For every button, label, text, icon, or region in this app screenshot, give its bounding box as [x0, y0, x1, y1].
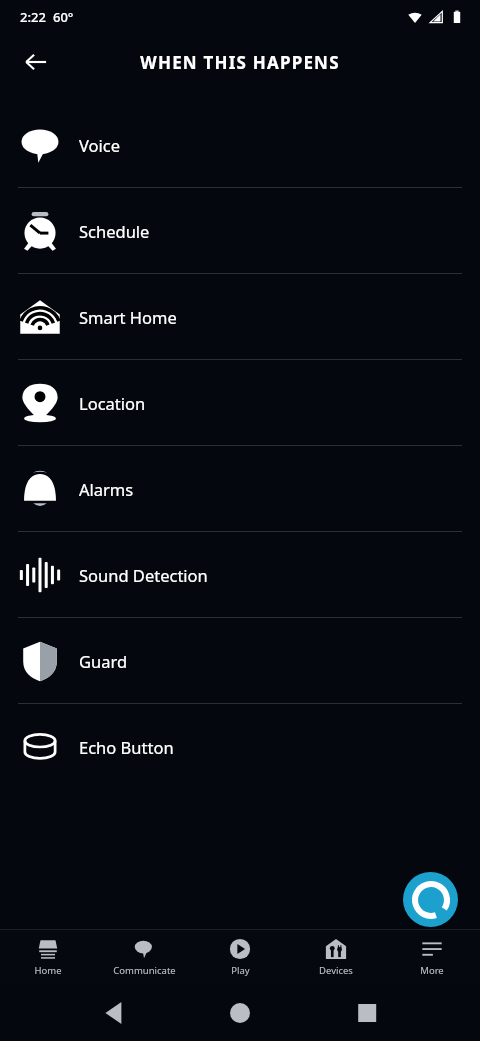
button[interactable]: More	[384, 930, 480, 985]
staticText: More	[420, 964, 444, 977]
staticText: 2:22	[20, 8, 46, 26]
button[interactable]: Alexa	[403, 872, 458, 927]
button[interactable]: Location	[0, 360, 480, 445]
staticText: Home	[34, 964, 62, 977]
staticText: Sound Detection	[79, 564, 208, 586]
staticText: WHEN THIS HAPPENS	[140, 51, 340, 74]
button[interactable]: Alarms	[0, 446, 480, 531]
staticText: 60°	[53, 8, 74, 26]
button[interactable]: Communicate	[96, 930, 192, 985]
staticText: Play	[231, 964, 250, 977]
button[interactable]: Home	[0, 930, 96, 985]
staticText: Alarms	[79, 478, 134, 500]
staticText: Communicate	[113, 964, 176, 977]
staticText: Schedule	[79, 220, 150, 242]
button[interactable]: Guard	[0, 618, 480, 703]
staticText: Smart Home	[79, 306, 177, 328]
button[interactable]: Sound Detection	[0, 532, 480, 617]
button[interactable]: Play	[192, 930, 288, 985]
button[interactable]: Schedule	[0, 188, 480, 273]
button[interactable]: Devices	[288, 930, 384, 985]
button[interactable]: Smart Home	[0, 274, 480, 359]
staticText: Voice	[79, 134, 121, 156]
button[interactable]: Back	[12, 38, 60, 86]
staticText: Guard	[79, 650, 128, 672]
button[interactable]: Echo Button	[0, 704, 480, 789]
staticText: Echo Button	[79, 736, 174, 758]
button[interactable]: Voice	[0, 102, 480, 187]
staticText: Location	[79, 392, 146, 414]
staticText: Devices	[319, 964, 353, 977]
